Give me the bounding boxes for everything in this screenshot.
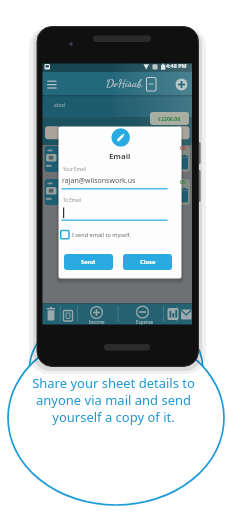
staticText: 00: [180, 179, 186, 186]
staticText: Your Email: [63, 166, 86, 172]
staticText: 4:48 PM: [166, 62, 187, 69]
button[interactable]: [177, 304, 192, 324]
button[interactable]: Send: [64, 254, 113, 270]
staticText: Expense: [136, 319, 154, 325]
staticText: DoHisab: [106, 76, 143, 90]
button[interactable]: [77, 304, 117, 324]
staticText: I send email to myself.: [72, 231, 131, 239]
button[interactable]: [174, 77, 189, 92]
staticText: Income: [89, 319, 105, 325]
button[interactable]: [62, 205, 168, 221]
staticText: abcd: [54, 102, 65, 109]
button[interactable]: ₹2200.00: [150, 112, 189, 125]
staticText: Email: [109, 151, 131, 162]
staticText: rajan@wilsonswork.us: [62, 176, 136, 186]
staticText: ₹2200.00: [158, 115, 181, 122]
button[interactable]: [44, 77, 60, 91]
staticText: Send: [81, 258, 96, 266]
staticText: To Email: [63, 197, 82, 203]
staticText: Share your sheet details to anyone via m…: [32, 374, 195, 426]
staticText: 00: [180, 145, 186, 152]
button[interactable]: [60, 230, 71, 241]
button[interactable]: [43, 304, 60, 324]
button[interactable]: [143, 75, 158, 92]
staticText: Close: [140, 258, 156, 266]
button[interactable]: [62, 175, 168, 190]
button[interactable]: [163, 304, 177, 324]
button[interactable]: [117, 304, 163, 324]
button[interactable]: [60, 304, 77, 324]
button[interactable]: Close: [123, 254, 172, 270]
